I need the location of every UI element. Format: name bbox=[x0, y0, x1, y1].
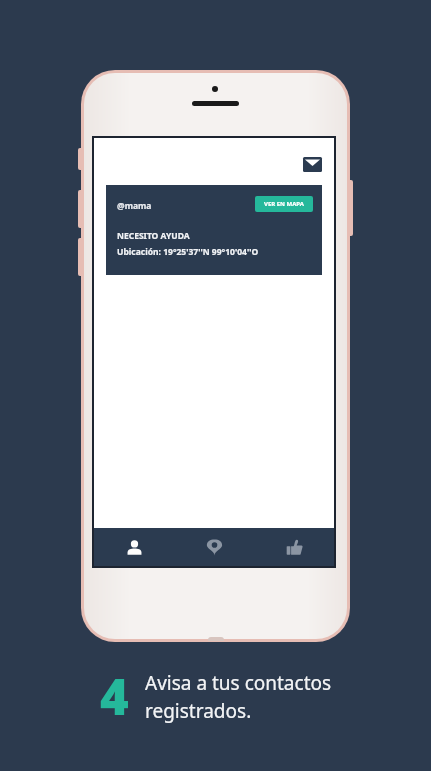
button[interactable]: Estoy bien bbox=[254, 528, 334, 566]
button[interactable]: VER EN MAPA bbox=[255, 196, 313, 212]
button[interactable]: Contactos bbox=[94, 528, 174, 566]
staticText: 4 bbox=[100, 663, 129, 730]
staticText: @mama bbox=[117, 200, 152, 212]
button[interactable]: Mensajes bbox=[298, 150, 326, 178]
staticText: registrados. bbox=[145, 698, 252, 724]
staticText: NECESITO AYUDA bbox=[117, 230, 190, 242]
staticText: Avisa a tus contactos bbox=[145, 670, 332, 696]
staticText: Ubicación: 19°25'37''N 99°10'04''O bbox=[117, 246, 259, 258]
button[interactable]: Mapa bbox=[174, 528, 254, 566]
staticText: VER EN MAPA bbox=[264, 200, 304, 208]
button[interactable]: @mama bbox=[106, 185, 322, 275]
